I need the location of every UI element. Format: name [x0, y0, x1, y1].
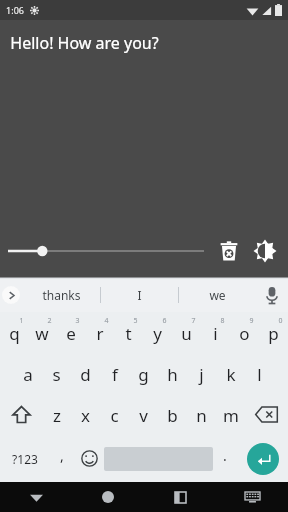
staticText: 5 — [133, 316, 138, 326]
staticText: Hello! How are you? — [10, 32, 159, 54]
button[interactable]: x — [71, 394, 100, 435]
staticText: e — [66, 322, 76, 345]
staticText: ?123 — [12, 451, 38, 467]
staticText: 8 — [220, 316, 225, 326]
staticText: r — [96, 322, 104, 345]
staticText: 2 — [47, 316, 52, 326]
button[interactable] — [8, 237, 204, 265]
staticText: a — [23, 363, 33, 386]
button[interactable]: I — [101, 278, 178, 312]
button[interactable]: we — [179, 278, 256, 312]
button[interactable]: d — [71, 353, 100, 394]
button[interactable]: e — [56, 312, 85, 353]
button[interactable]: . — [213, 435, 237, 482]
button[interactable]: , — [50, 435, 74, 482]
staticText: we — [209, 287, 226, 303]
button[interactable]: n — [187, 394, 216, 435]
staticText: c — [110, 404, 119, 427]
button[interactable]: v — [129, 394, 158, 435]
staticText: q — [9, 322, 20, 345]
staticText: j — [199, 363, 204, 386]
staticText: . — [223, 446, 227, 465]
button[interactable]: q — [0, 312, 28, 353]
staticText: x — [81, 404, 90, 427]
staticText: 3 — [75, 316, 80, 326]
button[interactable]: Enter — [237, 435, 288, 482]
staticText: s — [52, 363, 61, 386]
staticText: t — [125, 322, 132, 345]
button[interactable]: Emoji — [74, 435, 104, 482]
button[interactable]: Hide keyboard — [0, 482, 72, 512]
staticText: z — [53, 404, 61, 427]
button[interactable]: r — [85, 312, 114, 353]
button[interactable]: a — [13, 353, 42, 394]
staticText: i — [213, 322, 218, 345]
button[interactable]: ?123 — [0, 435, 50, 482]
button[interactable] — [104, 435, 213, 482]
staticText: l — [257, 363, 262, 386]
button[interactable]: g — [129, 353, 158, 394]
staticText: , — [60, 446, 64, 465]
staticText: h — [167, 363, 178, 386]
button[interactable]: b — [158, 394, 187, 435]
button[interactable]: k — [216, 353, 245, 394]
button[interactable]: Clear — [214, 236, 244, 266]
button[interactable]: t — [114, 312, 143, 353]
staticText: v — [139, 404, 148, 427]
staticText: thanks — [42, 287, 81, 303]
button[interactable]: thanks — [22, 278, 100, 312]
button[interactable]: l — [245, 353, 274, 394]
button[interactable]: j — [187, 353, 216, 394]
button[interactable]: f — [100, 353, 129, 394]
staticText: o — [239, 322, 250, 345]
button[interactable]: w — [28, 312, 56, 353]
staticText: d — [80, 363, 91, 386]
staticText: y — [153, 322, 162, 345]
button[interactable]: Switch keyboard — [216, 482, 288, 512]
button[interactable]: o — [230, 312, 259, 353]
button[interactable]: u — [172, 312, 201, 353]
button[interactable]: y — [143, 312, 172, 353]
button[interactable]: i — [201, 312, 230, 353]
button[interactable]: Home — [72, 482, 144, 512]
button[interactable]: Voice input — [256, 278, 288, 312]
button[interactable]: m — [216, 394, 245, 435]
button[interactable]: s — [42, 353, 71, 394]
button[interactable]: Shift — [0, 394, 42, 435]
staticText: f — [112, 363, 118, 386]
staticText: w — [35, 322, 49, 345]
button[interactable]: More suggestions — [0, 278, 22, 312]
button[interactable]: Recents — [144, 482, 216, 512]
staticText: g — [138, 363, 149, 386]
button[interactable]: h — [158, 353, 187, 394]
staticText: 9 — [249, 316, 254, 326]
staticText: 1 — [19, 316, 24, 326]
button[interactable]: Backspace — [245, 394, 288, 435]
staticText: b — [167, 404, 178, 427]
staticText: 1:06 — [6, 4, 24, 16]
button[interactable]: p — [259, 312, 288, 353]
staticText: I — [137, 287, 142, 303]
staticText: 4 — [104, 316, 109, 326]
staticText: p — [268, 322, 279, 345]
staticText: n — [196, 404, 207, 427]
staticText: k — [226, 363, 236, 386]
staticText: u — [181, 322, 192, 345]
staticText: 7 — [191, 316, 196, 326]
button[interactable]: z — [42, 394, 71, 435]
button[interactable]: Brightness — [250, 236, 280, 266]
staticText: m — [223, 404, 239, 427]
staticText: 0 — [278, 316, 283, 326]
button[interactable]: c — [100, 394, 129, 435]
staticText: 6 — [162, 316, 167, 326]
